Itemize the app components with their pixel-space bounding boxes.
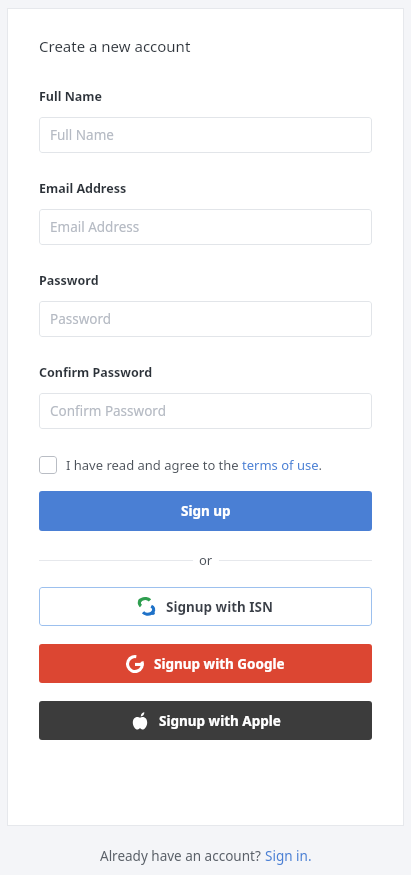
staticText: Full Name xyxy=(39,88,102,105)
staticText: I have read and agree to the terms of us… xyxy=(66,456,323,474)
button[interactable]: Signup with Apple xyxy=(39,701,372,740)
staticText: Sign in. xyxy=(265,847,312,865)
staticText: Confirm Password xyxy=(39,364,153,381)
staticText: Password xyxy=(50,310,112,328)
staticText: or xyxy=(199,551,213,569)
button[interactable]: I have read and agree to the terms of us… xyxy=(39,456,372,474)
staticText: Password xyxy=(39,272,99,289)
button[interactable]: Password xyxy=(39,301,372,337)
button[interactable]: Sign up xyxy=(39,491,372,531)
staticText: Sign up xyxy=(181,502,231,520)
staticText: Email Address xyxy=(50,218,140,236)
staticText: Create a new account xyxy=(39,36,191,56)
button[interactable]: Full Name xyxy=(39,117,372,153)
button[interactable]: Email Address xyxy=(39,209,372,245)
staticText: Confirm Password xyxy=(50,402,166,420)
staticText: Signup with ISN xyxy=(166,598,274,616)
button[interactable]: Sign in. xyxy=(265,847,312,865)
button[interactable]: Confirm Password xyxy=(39,393,372,429)
button[interactable]: Signup with Google xyxy=(39,644,372,683)
staticText: Already have an account? xyxy=(100,847,265,865)
staticText: Full Name xyxy=(50,126,114,144)
staticText: Signup with Apple xyxy=(159,712,281,730)
button[interactable]: Signup with ISN xyxy=(39,587,372,626)
staticText: Signup with Google xyxy=(154,655,285,673)
staticText: Email Address xyxy=(39,180,127,197)
